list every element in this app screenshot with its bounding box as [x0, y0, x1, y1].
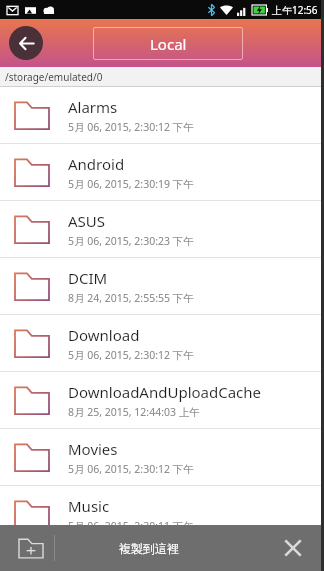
- staticText: DCIM: [68, 268, 108, 288]
- staticText: ASUS: [68, 211, 106, 231]
- staticText: 8月 24, 2015, 2:55:55 下午: [68, 291, 194, 305]
- button[interactable]: Android: [0, 144, 324, 200]
- staticText: 5月 06, 2015, 2:30:12 下午: [68, 462, 194, 476]
- button[interactable]: New folder: [14, 531, 48, 565]
- staticText: 5月 06, 2015, 2:30:19 下午: [68, 177, 194, 191]
- button[interactable]: Local: [93, 27, 243, 60]
- button[interactable]: DCIM: [0, 258, 324, 314]
- button[interactable]: Movies: [0, 429, 324, 485]
- button[interactable]: DownloadAndUploadCache: [0, 372, 324, 428]
- button[interactable]: 複製到這裡: [119, 541, 179, 556]
- staticText: 8月 25, 2015, 12:44:03 上午: [68, 405, 200, 419]
- staticText: 5月 06, 2015, 2:30:12 下午: [68, 120, 194, 134]
- staticText: Android: [68, 154, 125, 174]
- button[interactable]: ASUS: [0, 201, 324, 257]
- staticText: DownloadAndUploadCache: [68, 382, 262, 402]
- staticText: /storage/emulated/0: [5, 70, 103, 84]
- staticText: 5月 06, 2015, 2:30:23 下午: [68, 234, 194, 248]
- button[interactable]: Music: [0, 486, 324, 542]
- staticText: Alarms: [68, 97, 118, 117]
- button[interactable]: Cancel: [276, 531, 310, 565]
- staticText: 5月 06, 2015, 2:30:11 下午: [68, 519, 194, 533]
- button[interactable]: Alarms: [0, 87, 324, 143]
- staticText: Download: [68, 325, 140, 345]
- button[interactable]: Download: [0, 315, 324, 371]
- staticText: 5月 06, 2015, 2:30:12 下午: [68, 348, 194, 362]
- staticText: Local: [150, 34, 187, 54]
- staticText: 上午12:56: [272, 3, 318, 17]
- staticText: Music: [68, 496, 110, 516]
- button[interactable]: Back: [9, 26, 43, 60]
- staticText: Movies: [68, 439, 118, 459]
